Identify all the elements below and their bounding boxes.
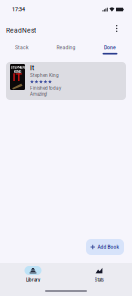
button[interactable]: Library [0, 266, 66, 282]
button[interactable]: Stats [66, 266, 132, 282]
button[interactable]: Done [88, 42, 132, 56]
button[interactable]: STEPHEN [6, 62, 126, 100]
staticText: Stack [15, 44, 29, 50]
staticText: 17:34 [12, 6, 25, 13]
staticText: Stats [94, 277, 103, 282]
button[interactable]: Stack [0, 42, 44, 56]
staticText: Done [104, 44, 116, 50]
staticText: Finished today [30, 85, 61, 91]
staticText: ReadNest [6, 27, 36, 34]
staticText: Add Book [97, 244, 119, 250]
staticText: KING [14, 70, 21, 74]
button[interactable]: Reading [44, 42, 88, 56]
staticText: Reading [56, 44, 75, 50]
staticText: Library [26, 277, 40, 282]
staticText: It [30, 64, 34, 72]
button[interactable]: More options [116, 25, 125, 36]
staticText: Amazing! [30, 92, 47, 97]
staticText: STEPHEN [10, 66, 24, 70]
staticText: IT [12, 71, 22, 84]
staticText: Stephen King [30, 73, 59, 78]
button[interactable]: Add Book [86, 239, 124, 255]
